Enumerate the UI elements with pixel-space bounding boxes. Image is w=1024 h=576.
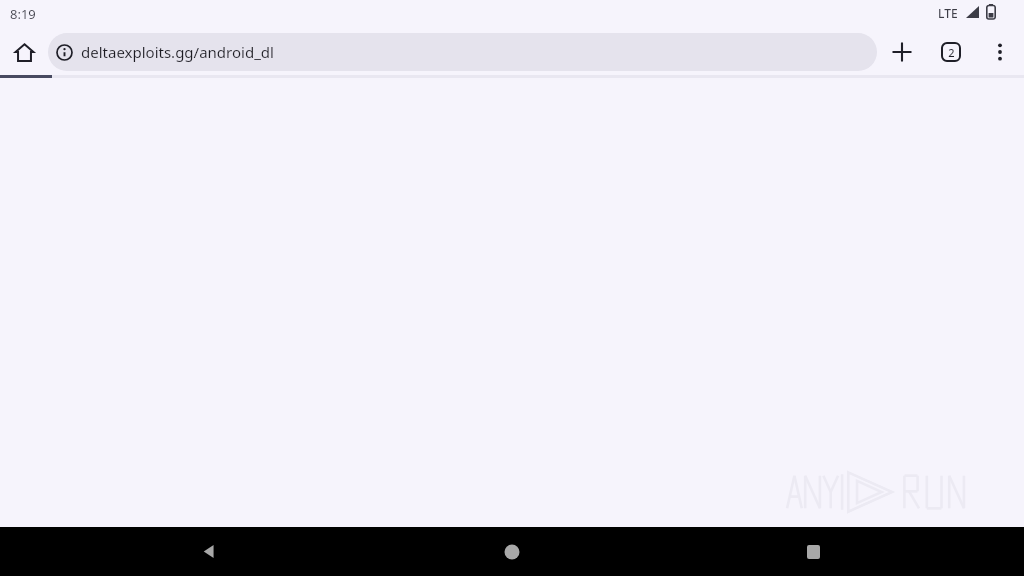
button[interactable]: Tabs, 2 open [933, 34, 969, 70]
button[interactable]: More options [982, 34, 1018, 70]
staticText: deltaexploits.gg/android_dl [81, 42, 274, 62]
staticText: LTE [938, 5, 958, 21]
button[interactable]: Home [6, 34, 42, 70]
staticText: 8:19 [10, 5, 36, 23]
staticText: 2 [948, 45, 955, 60]
button[interactable]: deltaexploits.gg/android_dl [48, 33, 877, 71]
button[interactable]: Back [185, 527, 233, 576]
button[interactable]: Home [488, 527, 536, 576]
button[interactable]: New tab [884, 34, 920, 70]
button[interactable]: Recent apps [789, 527, 837, 576]
